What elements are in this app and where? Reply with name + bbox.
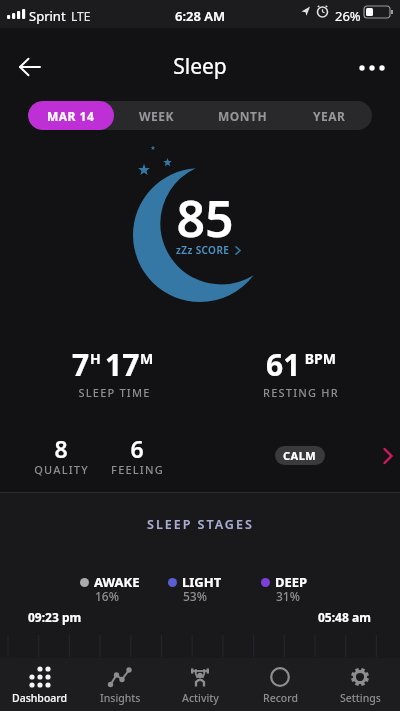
staticText: Record [263, 691, 298, 705]
button[interactable]: Insights [80, 658, 160, 711]
staticText: 7 [72, 344, 90, 385]
button[interactable]: Dashboard [0, 658, 80, 711]
button[interactable]: Activity [160, 658, 240, 711]
button[interactable]: MAR 14 [28, 101, 114, 130]
staticText: 26% [335, 7, 361, 25]
staticText: H [90, 349, 105, 368]
staticText: Dashboard [12, 691, 68, 705]
staticText: 6 [130, 433, 144, 464]
staticText: Activity [182, 691, 219, 705]
button[interactable]: Record [240, 658, 320, 711]
staticText: 8 [54, 433, 68, 464]
button[interactable]: CALM [275, 446, 325, 465]
staticText: MONTH [218, 108, 268, 124]
staticText: 17 [105, 344, 140, 385]
staticText: DEEP [275, 573, 308, 591]
staticText: YEAR [313, 108, 346, 124]
staticText: 61 [266, 344, 301, 385]
staticText: M [140, 349, 154, 368]
staticText: BPM [301, 349, 336, 368]
staticText: zZz SCORE [176, 243, 230, 257]
staticText: LIGHT [182, 573, 222, 591]
staticText: 6:28 AM [175, 7, 226, 25]
staticText: MAR 14 [47, 108, 95, 124]
staticText: CALM [283, 448, 317, 463]
button[interactable]: MONTH [200, 101, 286, 130]
staticText: QUALITY [34, 462, 89, 477]
staticText: Sprint [29, 7, 66, 25]
button[interactable] [350, 55, 394, 81]
button[interactable]: zZz SCORE [143, 243, 273, 257]
staticText: Sleep [173, 52, 227, 81]
staticText: Insights [100, 691, 141, 705]
button[interactable] [10, 52, 50, 82]
staticText: 05:48 am [318, 609, 371, 625]
staticText: 53% [183, 588, 207, 604]
staticText: LTE [71, 8, 91, 24]
button[interactable]: YEAR [286, 101, 372, 130]
button[interactable] [376, 444, 400, 468]
staticText: RESTING HR [263, 385, 339, 400]
staticText: SLEEP TIME [78, 385, 151, 400]
staticText: 16% [95, 588, 119, 604]
staticText: WEEK [139, 108, 175, 124]
staticText: FEELING [111, 462, 164, 477]
staticText: 85 [176, 184, 234, 252]
button[interactable]: WEEK [114, 101, 200, 130]
button[interactable]: Settings [320, 658, 400, 711]
staticText: Settings [340, 691, 381, 705]
staticText: 09:23 pm [28, 609, 82, 625]
staticText: AWAKE [94, 573, 140, 591]
staticText: SLEEP STAGES [147, 516, 254, 533]
staticText: 31% [276, 588, 300, 604]
